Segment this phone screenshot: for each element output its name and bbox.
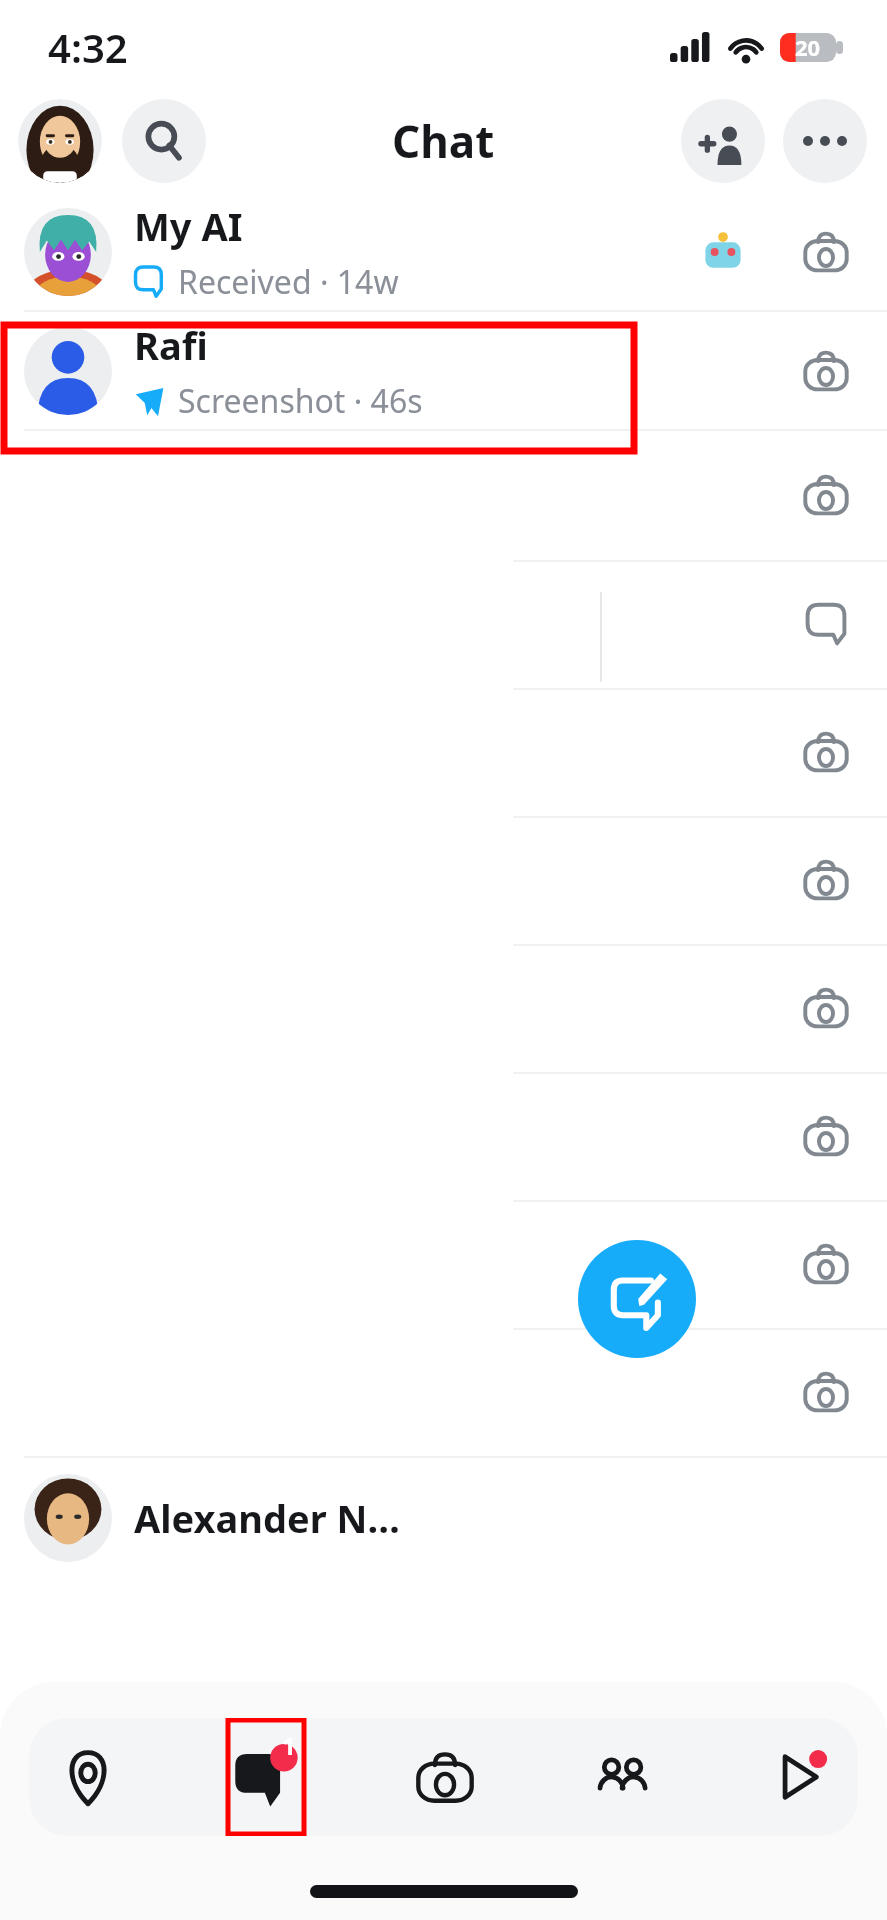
button[interactable]: Send a snap [789,1099,863,1173]
staticText: Received · 14w [178,260,399,304]
staticText: Alexander N… [134,1492,400,1544]
button[interactable] [18,99,102,183]
staticText: My AI [134,200,243,252]
button[interactable]: Send a snap [789,458,863,532]
button[interactable]: Send a snap [789,1227,863,1301]
button[interactable]: Spotlight [762,1721,836,1833]
button[interactable]: Send a snap [789,215,863,289]
button[interactable]: Rafi [0,312,887,429]
button[interactable]: Stories [585,1721,659,1833]
button[interactable]: Add friends [681,99,765,183]
staticText: Rafi [134,319,208,371]
button[interactable]: New chat [578,1240,696,1358]
staticText: 4:32 [48,20,128,74]
staticText: Chat [392,111,495,171]
button[interactable]: Search [122,99,206,183]
staticText: Screenshot · 46s [178,379,423,423]
button[interactable]: Map [51,1721,125,1833]
button[interactable]: Send a snap [789,843,863,917]
button[interactable]: Send a snap [789,971,863,1045]
staticText: 20 [795,32,821,62]
button[interactable]: Send a snap [789,715,863,789]
button[interactable]: Send a snap [789,1355,863,1429]
button[interactable]: Chat [229,1721,303,1833]
staticText: 1 [282,1729,296,1762]
button[interactable]: Send a snap [789,334,863,408]
button[interactable]: Camera [408,1721,482,1833]
button[interactable]: My AI [0,193,887,310]
button[interactable]: Chat [789,587,863,661]
button[interactable]: More options [783,99,867,183]
